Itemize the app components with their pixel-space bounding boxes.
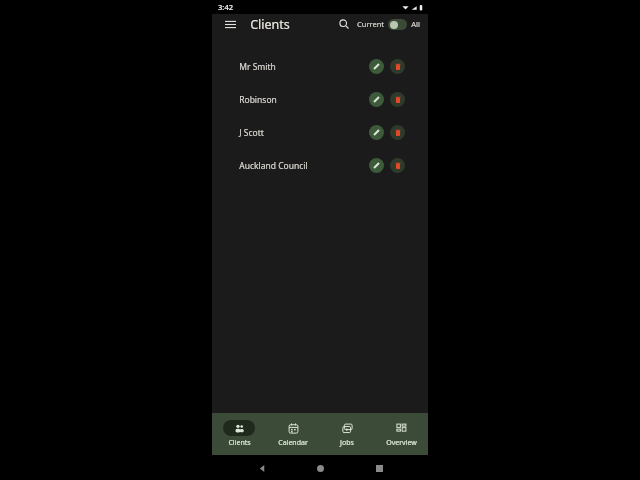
button[interactable]: Edit Mr Smith xyxy=(369,59,384,74)
staticText: Robinson xyxy=(239,94,277,106)
button[interactable]: Home xyxy=(311,459,329,477)
staticText: 3:42 xyxy=(218,2,233,12)
button[interactable]: Delete J Scott xyxy=(390,125,405,140)
button[interactable]: Robinson xyxy=(212,83,428,116)
button[interactable]: Open navigation menu xyxy=(220,14,240,34)
staticText: Calendar xyxy=(278,438,308,448)
button[interactable]: Delete Mr Smith xyxy=(390,59,405,74)
button[interactable]: Jobs xyxy=(320,420,374,448)
staticText: Clients xyxy=(250,16,290,33)
button[interactable]: Back xyxy=(253,459,271,477)
button[interactable]: Delete Robinson xyxy=(390,92,405,107)
staticText: Overview xyxy=(386,438,417,448)
staticText: Auckland Council xyxy=(239,160,308,172)
button[interactable]: Edit Auckland Council xyxy=(369,158,384,173)
staticText: All xyxy=(411,19,420,29)
button[interactable]: Mr Smith xyxy=(212,50,428,83)
staticText: J Scott xyxy=(239,127,264,139)
button[interactable]: Delete Auckland Council xyxy=(390,158,405,173)
button[interactable]: Clients xyxy=(212,420,266,448)
button[interactable]: Edit Robinson xyxy=(369,92,384,107)
button[interactable]: J Scott xyxy=(212,116,428,149)
button[interactable]: Recent apps xyxy=(370,459,388,477)
button[interactable]: Calendar xyxy=(266,420,320,448)
button[interactable]: Search xyxy=(335,15,353,33)
staticText: Clients xyxy=(228,438,251,448)
staticText: Current xyxy=(357,19,384,29)
button[interactable]: Overview xyxy=(374,420,428,448)
button[interactable]: Edit J Scott xyxy=(369,125,384,140)
staticText: Jobs xyxy=(340,438,354,448)
staticText: Mr Smith xyxy=(239,61,276,73)
button[interactable]: Toggle current or all clients xyxy=(388,19,407,30)
button[interactable]: Auckland Council xyxy=(212,149,428,182)
button[interactable]: Add client xyxy=(389,415,420,446)
